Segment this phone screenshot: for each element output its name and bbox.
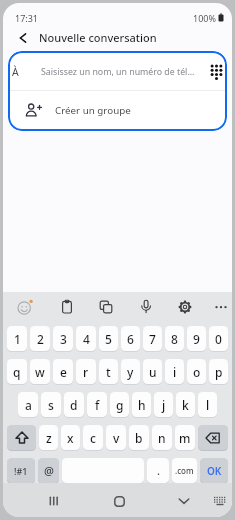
- staticText: t: [106, 364, 111, 380]
- button[interactable]: 7: [143, 326, 162, 351]
- button[interactable]: q: [7, 359, 27, 384]
- staticText: h: [138, 397, 146, 413]
- button[interactable]: 4: [76, 326, 96, 351]
- button[interactable]: OK: [200, 458, 228, 483]
- staticText: 17:31: [15, 12, 39, 24]
- staticText: 4: [83, 331, 90, 347]
- button[interactable]: [7, 425, 36, 450]
- staticText: q: [13, 364, 21, 380]
- staticText: À: [12, 65, 19, 79]
- staticText: e: [60, 364, 67, 380]
- staticText: 6: [127, 331, 134, 347]
- button[interactable]: n: [152, 425, 172, 450]
- staticText: @: [44, 463, 54, 478]
- button[interactable]: e: [53, 359, 73, 384]
- button[interactable]: j: [154, 392, 173, 417]
- button[interactable]: [97, 298, 115, 316]
- button[interactable]: c: [83, 425, 103, 450]
- button[interactable]: [111, 493, 127, 509]
- button[interactable]: m: [175, 425, 195, 450]
- button[interactable]: z: [39, 425, 58, 450]
- staticText: j: [162, 397, 166, 413]
- button[interactable]: y: [121, 359, 140, 384]
- staticText: g: [116, 397, 124, 413]
- button[interactable]: l: [198, 392, 217, 417]
- staticText: 8: [171, 331, 178, 347]
- button[interactable]: u: [143, 359, 162, 384]
- button[interactable]: .: [147, 458, 169, 483]
- button[interactable]: [46, 493, 62, 509]
- button[interactable]: 3: [53, 326, 73, 351]
- button[interactable]: b: [129, 425, 149, 450]
- button[interactable]: s: [41, 392, 61, 417]
- button[interactable]: .com: [172, 458, 197, 483]
- button[interactable]: 9: [187, 326, 206, 351]
- button[interactable]: k: [176, 392, 195, 417]
- button[interactable]: [212, 298, 230, 316]
- button[interactable]: 5: [99, 326, 118, 351]
- button[interactable]: [176, 298, 194, 316]
- button[interactable]: r: [76, 359, 96, 384]
- staticText: z: [46, 430, 52, 446]
- button[interactable]: o: [187, 359, 206, 384]
- button[interactable]: [58, 298, 76, 316]
- staticText: u: [149, 364, 157, 380]
- staticText: i: [173, 364, 177, 380]
- button[interactable]: [198, 425, 228, 450]
- staticText: m: [179, 430, 191, 446]
- staticText: s: [48, 397, 54, 413]
- button[interactable]: x: [61, 425, 80, 450]
- staticText: d: [70, 397, 78, 413]
- staticText: y: [127, 364, 134, 380]
- button[interactable]: [16, 298, 34, 316]
- staticText: x: [67, 430, 74, 446]
- staticText: Nouvelle conversation: [39, 30, 157, 45]
- staticText: c: [90, 430, 96, 446]
- staticText: p: [215, 364, 223, 380]
- button[interactable]: v: [106, 425, 126, 450]
- button[interactable]: 2: [30, 326, 50, 351]
- button[interactable]: Créer un groupe: [25, 91, 225, 129]
- staticText: 5: [105, 331, 112, 347]
- button[interactable]: 0: [209, 326, 228, 351]
- button[interactable]: t: [99, 359, 118, 384]
- button[interactable]: 8: [165, 326, 184, 351]
- staticText: b: [135, 430, 143, 446]
- staticText: n: [158, 430, 166, 446]
- button[interactable]: 6: [121, 326, 140, 351]
- button[interactable]: f: [87, 392, 107, 417]
- staticText: l: [206, 397, 210, 413]
- button[interactable]: À: [12, 53, 225, 90]
- staticText: w: [35, 364, 45, 380]
- button[interactable]: [208, 63, 225, 80]
- button[interactable]: [176, 493, 192, 509]
- staticText: 3: [60, 331, 67, 347]
- button[interactable]: p: [209, 359, 228, 384]
- button[interactable]: i: [165, 359, 184, 384]
- button[interactable]: [16, 31, 30, 45]
- button[interactable]: g: [110, 392, 129, 417]
- button[interactable]: h: [132, 392, 151, 417]
- staticText: OK: [207, 464, 222, 478]
- button[interactable]: a: [18, 392, 38, 417]
- staticText: Créer un groupe: [55, 104, 131, 117]
- button[interactable]: !#1: [7, 458, 35, 483]
- staticText: o: [193, 364, 201, 380]
- staticText: v: [113, 430, 120, 446]
- staticText: 7: [149, 331, 156, 347]
- staticText: k: [182, 397, 189, 413]
- staticText: r: [83, 364, 89, 380]
- staticText: 9: [193, 331, 200, 347]
- button[interactable]: [137, 298, 155, 316]
- staticText: 100%: [193, 12, 216, 24]
- button[interactable]: @: [38, 458, 59, 483]
- button[interactable]: d: [64, 392, 84, 417]
- staticText: 2: [37, 331, 44, 347]
- button[interactable]: w: [30, 359, 50, 384]
- staticText: a: [25, 397, 32, 413]
- button[interactable]: [212, 493, 228, 509]
- staticText: f: [95, 397, 100, 413]
- staticText: 1: [14, 331, 21, 347]
- button[interactable]: 1: [7, 326, 27, 351]
